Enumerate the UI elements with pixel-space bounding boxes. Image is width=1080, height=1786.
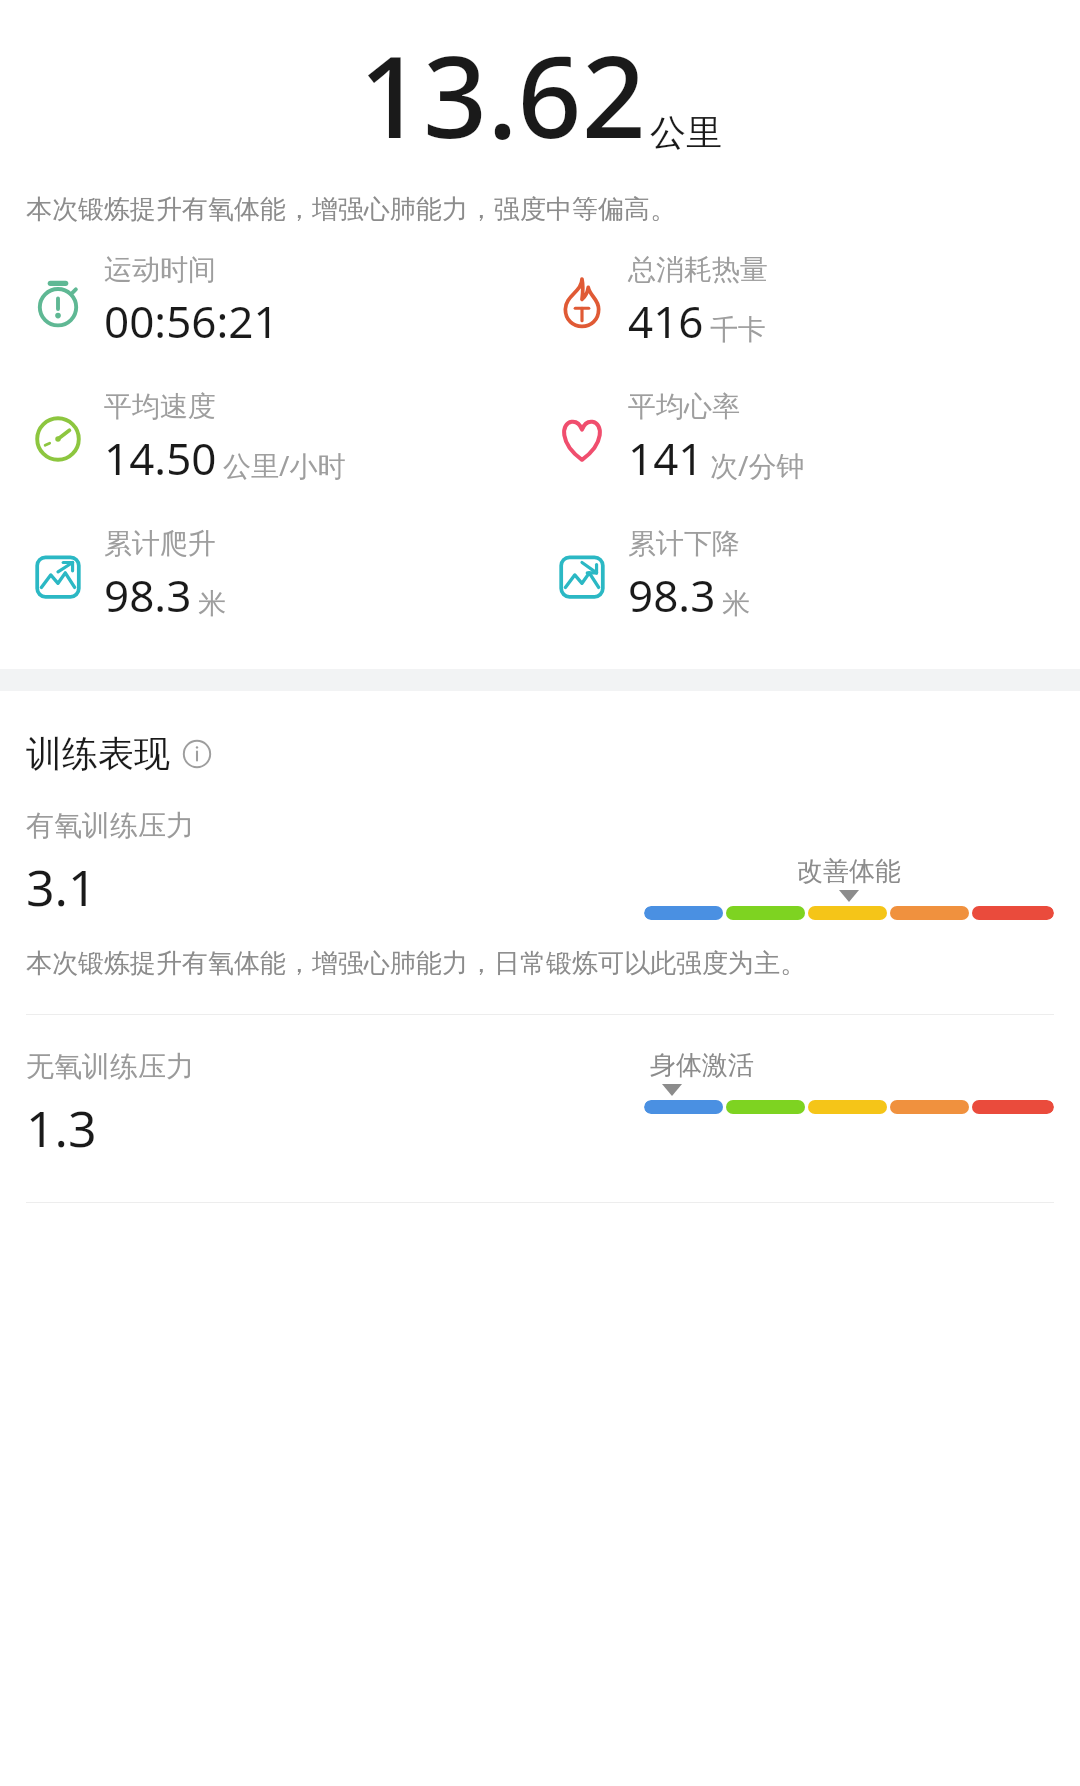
staticText: 公里 <box>650 110 722 155</box>
staticText: 98.3 <box>104 565 192 625</box>
staticText: 00:56:21 <box>104 291 279 351</box>
button[interactable]: 运动时间 <box>26 252 540 351</box>
button[interactable]: 平均心率 <box>550 389 1080 488</box>
staticText: 416 <box>628 291 704 351</box>
staticText: 平均速度 <box>104 389 216 424</box>
staticText: 千卡 <box>710 312 766 347</box>
staticText: 平均心率 <box>628 389 740 424</box>
staticText: 运动时间 <box>104 252 216 287</box>
staticText: 次/分钟 <box>710 446 805 484</box>
button[interactable] <box>644 1100 1054 1114</box>
button[interactable]: 累计爬升 <box>26 526 540 625</box>
staticText: 无氧训练压力 <box>26 1049 194 1084</box>
staticText: 3.1 <box>26 853 97 921</box>
staticText: 身体激活 <box>650 1049 754 1082</box>
staticText: 141 <box>628 428 704 488</box>
staticText: 14.50 <box>104 428 217 488</box>
staticText: 总消耗热量 <box>628 252 768 287</box>
button[interactable]: 总消耗热量 <box>550 252 1080 351</box>
staticText: 1.3 <box>26 1094 97 1162</box>
button[interactable]: 平均速度 <box>26 389 540 488</box>
staticText: 米 <box>198 586 226 621</box>
button[interactable]: 训练表现 <box>0 725 1080 782</box>
staticText: 累计爬升 <box>104 526 216 561</box>
staticText: 本次锻炼提升有氧体能，增强心肺能力，日常锻炼可以此强度为主。 <box>26 947 1054 980</box>
staticText: 本次锻炼提升有氧体能，增强心肺能力，强度中等偏高。 <box>26 193 1054 226</box>
other: Info about training performance <box>182 739 212 769</box>
staticText: 米 <box>722 586 750 621</box>
staticText: 98.3 <box>628 565 716 625</box>
staticText: 13.62 <box>359 18 646 171</box>
button[interactable] <box>644 906 1054 920</box>
staticText: 有氧训练压力 <box>26 808 194 843</box>
staticText: 公里/小时 <box>223 446 346 484</box>
staticText: 训练表现 <box>26 731 170 776</box>
button[interactable]: 累计下降 <box>550 526 1080 625</box>
staticText: 改善体能 <box>797 855 901 888</box>
staticText: 累计下降 <box>628 526 740 561</box>
